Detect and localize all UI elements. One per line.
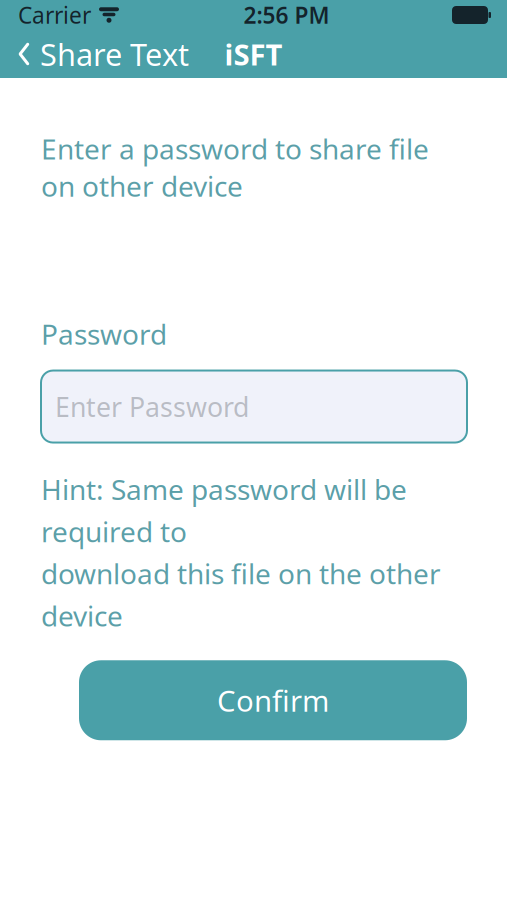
- button[interactable]: Confirm: [79, 660, 467, 740]
- staticText: Carrier: [18, 0, 91, 30]
- staticText: Enter a password to share file on other …: [41, 130, 429, 204]
- button[interactable]: Enter Password: [41, 370, 467, 442]
- staticText: Share Text: [40, 34, 189, 74]
- staticText: 2:56 PM: [243, 0, 329, 30]
- staticText: Password: [41, 315, 167, 353]
- staticText: Confirm: [217, 681, 329, 720]
- staticText: Hint: Same password will be required to …: [41, 470, 441, 634]
- staticText: Enter Password: [55, 389, 249, 424]
- button[interactable]: Share Text: [0, 30, 199, 78]
- staticText: iSFT: [224, 34, 282, 73]
